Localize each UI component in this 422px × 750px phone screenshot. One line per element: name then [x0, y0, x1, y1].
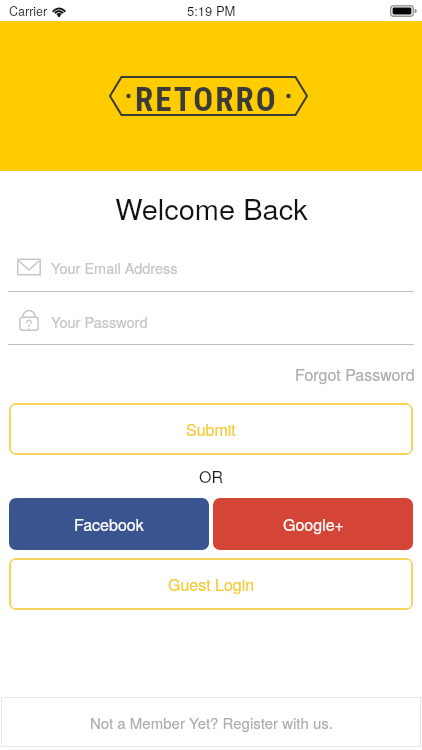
staticText: Your Email Address	[51, 257, 178, 278]
staticText: Facebook	[74, 513, 144, 536]
other: Battery	[390, 5, 417, 17]
button[interactable]: Forgot Password	[295, 363, 415, 386]
staticText: 5:19 PM	[187, 1, 236, 20]
button[interactable]: Not a Member Yet? Register with us.	[1, 697, 421, 747]
staticText: Google+	[283, 513, 344, 536]
staticText: Submit	[186, 418, 236, 441]
other: Wi-Fi	[52, 6, 66, 17]
staticText: Welcome Back	[115, 187, 308, 229]
button[interactable]: Email	[0, 237, 422, 292]
other: Password	[17, 310, 41, 332]
staticText: Guest Login	[168, 573, 255, 596]
other: Email	[17, 256, 41, 278]
staticText: Your Password	[51, 311, 148, 332]
staticText: OR	[199, 465, 224, 488]
button[interactable]: Guest Login	[9, 558, 413, 610]
staticText: RETORRO	[135, 80, 278, 119]
staticText: Not a Member Yet? Register with us.	[90, 712, 333, 733]
button[interactable]: Facebook	[9, 498, 209, 550]
staticText: Carrier	[9, 2, 48, 20]
button[interactable]: Google+	[213, 498, 413, 550]
button[interactable]: Submit	[9, 403, 413, 455]
button[interactable]: Password	[0, 292, 422, 345]
